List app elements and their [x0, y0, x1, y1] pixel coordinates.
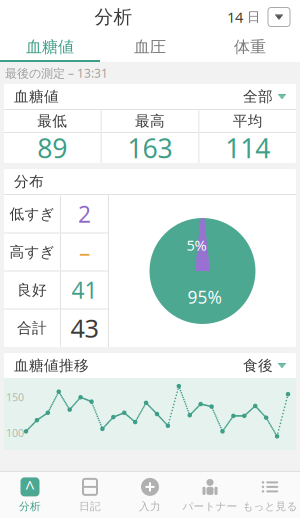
staticText: ^	[25, 476, 35, 499]
staticText: 日記	[79, 500, 101, 513]
staticText: 最後の測定 – 13:31	[5, 65, 108, 81]
staticText: 41	[71, 275, 97, 305]
staticText: 最高	[135, 112, 165, 130]
button[interactable]: 全部	[243, 87, 286, 105]
button[interactable]: 体重	[200, 34, 300, 62]
staticText: 95%	[187, 285, 221, 308]
staticText: パートナー	[182, 500, 237, 513]
staticText: 114	[225, 130, 270, 166]
button[interactable]: ^	[0, 477, 60, 513]
staticText: 体重	[234, 37, 266, 57]
button[interactable]: 血糖値	[0, 34, 100, 62]
staticText: 150	[6, 390, 24, 404]
staticText: 43	[70, 311, 98, 345]
staticText: 血糖値	[14, 87, 59, 105]
staticText: 全部	[243, 87, 273, 105]
staticText: 5%	[186, 235, 206, 255]
staticText: 分析	[19, 500, 41, 513]
staticText: 最低	[37, 112, 67, 130]
button[interactable]: 食後	[243, 356, 286, 374]
staticText: 血圧	[134, 37, 166, 57]
staticText: 入力	[139, 500, 161, 513]
staticText: 食後	[243, 356, 273, 374]
staticText: 良好	[17, 281, 47, 299]
staticText: 低すぎ	[9, 205, 54, 223]
staticText: 血糖値	[26, 37, 74, 57]
staticText: 89	[37, 130, 67, 166]
button[interactable]: パートナー	[180, 477, 240, 513]
staticText: 平均	[233, 112, 263, 130]
button[interactable]: 期間を変更	[268, 7, 290, 26]
staticText: –	[79, 237, 90, 267]
button[interactable]: もっと見る	[240, 477, 300, 513]
staticText: 高すぎ	[9, 243, 54, 261]
staticText: 2	[78, 199, 91, 229]
staticText: 100	[6, 426, 24, 440]
staticText: 163	[127, 130, 172, 166]
staticText: 血糖値推移	[14, 356, 89, 374]
button[interactable]: 血圧	[100, 34, 200, 62]
button[interactable]: 日記	[60, 477, 120, 513]
button[interactable]: 入力	[120, 477, 180, 513]
staticText: 分布	[14, 172, 44, 190]
staticText: もっと見る	[242, 500, 297, 513]
staticText: 日	[247, 9, 260, 25]
staticText: 合計	[17, 319, 47, 337]
staticText: 14	[227, 7, 243, 27]
staticText: 分析	[94, 5, 132, 28]
